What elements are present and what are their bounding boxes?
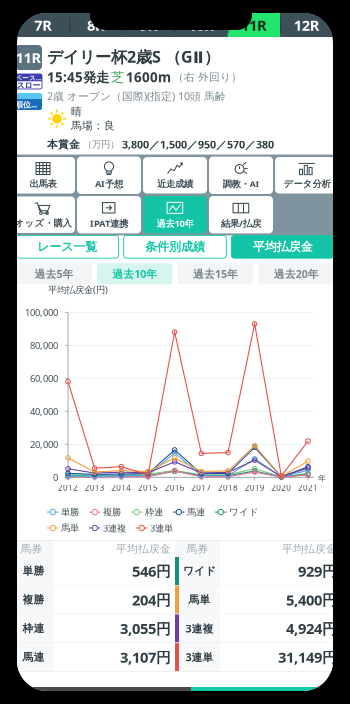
staticText: 40,000	[30, 405, 58, 417]
button[interactable]: 近走成績	[143, 157, 207, 193]
staticText: 順位予想	[15, 99, 42, 110]
staticText: 2歳 オープン（国際)(指定) 10頭 馬齢	[47, 89, 226, 103]
staticText: データ分析	[283, 178, 330, 189]
staticText: 2012	[58, 482, 78, 493]
button[interactable]: 9R	[122, 13, 175, 37]
staticText: オッズ・購入	[14, 217, 71, 229]
staticText: 過去5年	[34, 267, 73, 281]
button[interactable]: 12R	[280, 13, 333, 37]
staticText: 本賞金	[47, 138, 80, 151]
staticText: 馬券	[186, 542, 208, 555]
staticText: 2018	[218, 482, 238, 493]
staticText: 単勝	[22, 564, 44, 577]
staticText: 過去20年	[274, 267, 319, 281]
staticText: 近走成績	[157, 178, 193, 189]
button[interactable]: 過去10年	[97, 263, 173, 284]
button[interactable]: IPAT連携	[77, 196, 141, 233]
button[interactable]: 11R	[228, 13, 280, 37]
staticText: 枠連	[22, 622, 44, 635]
staticText: 過去10年	[156, 217, 193, 229]
button[interactable]: 出馬表	[11, 157, 75, 193]
staticText: 80,000	[30, 339, 58, 351]
staticText: 7R	[34, 15, 52, 35]
staticText: 2013	[85, 482, 105, 493]
staticText: 2015	[138, 482, 158, 493]
staticText: 204円	[132, 590, 171, 609]
staticText: 平均払戻金	[116, 542, 171, 555]
staticText: 2019	[245, 482, 265, 493]
staticText: IPAT連携	[90, 217, 128, 229]
staticText: 芝	[111, 69, 124, 85]
staticText: AI予想	[95, 177, 123, 190]
staticText: 過去15年	[193, 267, 238, 281]
staticText: 2017	[191, 482, 211, 493]
staticText: 2016	[165, 482, 185, 493]
staticText: ペース予想	[15, 73, 42, 82]
button[interactable]: 平均払戻金	[231, 235, 334, 258]
button[interactable]: オッズ・購入	[11, 196, 75, 233]
staticText: 2020	[271, 482, 291, 493]
staticText: 平均払戻金	[253, 239, 313, 254]
staticText: 馬単	[61, 522, 79, 534]
staticText: デイリー杯2歳S （GⅡ）	[47, 46, 220, 67]
staticText: 3,107円	[120, 647, 171, 667]
staticText: 3連単	[150, 522, 173, 534]
button[interactable]: 7R	[17, 13, 70, 37]
staticText: 11R	[15, 48, 41, 67]
staticText: 9R	[140, 15, 158, 35]
staticText: 100,000	[25, 306, 58, 318]
staticText: 8R	[87, 15, 105, 35]
staticText: ワイド	[183, 564, 216, 577]
staticText: 3連複	[185, 621, 213, 635]
button[interactable]: 調教・AI	[209, 157, 273, 194]
staticText: 3,800／1,500／950／570／380	[122, 137, 274, 151]
button[interactable]: データ分析	[275, 157, 339, 193]
staticText: 調教・AI	[222, 178, 259, 190]
staticText: 11R	[241, 15, 267, 35]
staticText: 3,055円	[120, 619, 171, 638]
button[interactable]: 10R	[175, 13, 228, 37]
staticText: 60,000	[30, 372, 58, 384]
button[interactable]: AI予想	[77, 156, 141, 194]
staticText: 年	[318, 473, 326, 483]
staticText: 複勝	[103, 506, 121, 518]
staticText: 単勝	[61, 506, 79, 518]
staticText: 31,149円	[278, 647, 337, 667]
staticText: 馬場：良	[71, 119, 115, 132]
staticText: 2021	[298, 482, 318, 493]
staticText: 馬連	[187, 506, 205, 518]
staticText: 平均払戻金(円)	[48, 283, 108, 296]
staticText: 10R	[188, 15, 214, 35]
staticText: 15:45発走	[47, 68, 109, 86]
staticText: 出馬表	[29, 178, 56, 189]
button[interactable]: 8R	[70, 13, 122, 37]
button[interactable]: 過去20年	[258, 263, 334, 284]
staticText: 馬連	[22, 650, 44, 664]
staticText: 枠連	[145, 506, 163, 518]
staticText: 4,924円	[286, 619, 337, 638]
staticText: 546円	[132, 561, 171, 581]
staticText: スロー	[16, 80, 40, 90]
staticText: ワイド	[229, 506, 259, 518]
staticText: レース一覧	[37, 239, 97, 254]
staticText: （万円）	[83, 139, 119, 150]
staticText: 1600m	[126, 68, 171, 86]
staticText: 3連複	[103, 522, 126, 534]
staticText: 条件別成績	[145, 239, 205, 254]
staticText: 929円	[298, 561, 337, 581]
staticText: 過去10年	[112, 267, 157, 281]
button[interactable]: 結果/払戻	[209, 196, 273, 233]
staticText: 3連単	[185, 650, 213, 664]
staticText: 馬券	[20, 542, 42, 555]
staticText: 晴	[71, 105, 82, 118]
staticText: 結果/払戻	[221, 217, 261, 229]
button[interactable]: 過去5年	[16, 263, 92, 284]
button[interactable]: 過去10年	[143, 196, 207, 233]
button[interactable]: レース一覧	[16, 235, 119, 258]
staticText: 馬単	[188, 593, 210, 606]
button[interactable]: 条件別成績	[124, 235, 226, 258]
staticText: 20,000	[30, 438, 58, 450]
staticText: 5,400円	[286, 590, 337, 609]
staticText: 2014	[111, 482, 131, 493]
button[interactable]: 過去15年	[177, 263, 253, 284]
